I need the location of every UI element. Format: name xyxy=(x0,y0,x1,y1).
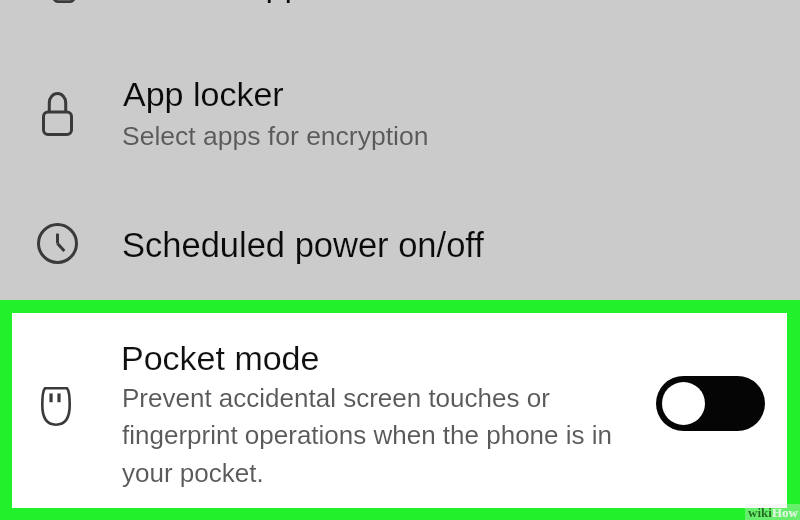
staticText: Scheduled power on/off xyxy=(122,226,484,265)
button[interactable]: Pocket mode toggle, off xyxy=(656,376,765,431)
staticText: Select apps for encryption xyxy=(122,121,429,151)
button[interactable]: Scheduled power on/off xyxy=(0,195,800,290)
button[interactable]: App locker xyxy=(0,60,800,175)
staticText: Pocket mode xyxy=(121,339,320,377)
button[interactable]: Pocket mode xyxy=(12,313,787,508)
staticText: Restrict apps xyxy=(122,0,321,3)
button[interactable]: Restrict apps xyxy=(122,0,321,3)
staticText: Prevent accidental screen touches or fin… xyxy=(122,383,612,488)
staticText: App locker xyxy=(123,75,284,113)
staticText: How xyxy=(772,505,798,519)
staticText: wiki xyxy=(748,505,772,519)
